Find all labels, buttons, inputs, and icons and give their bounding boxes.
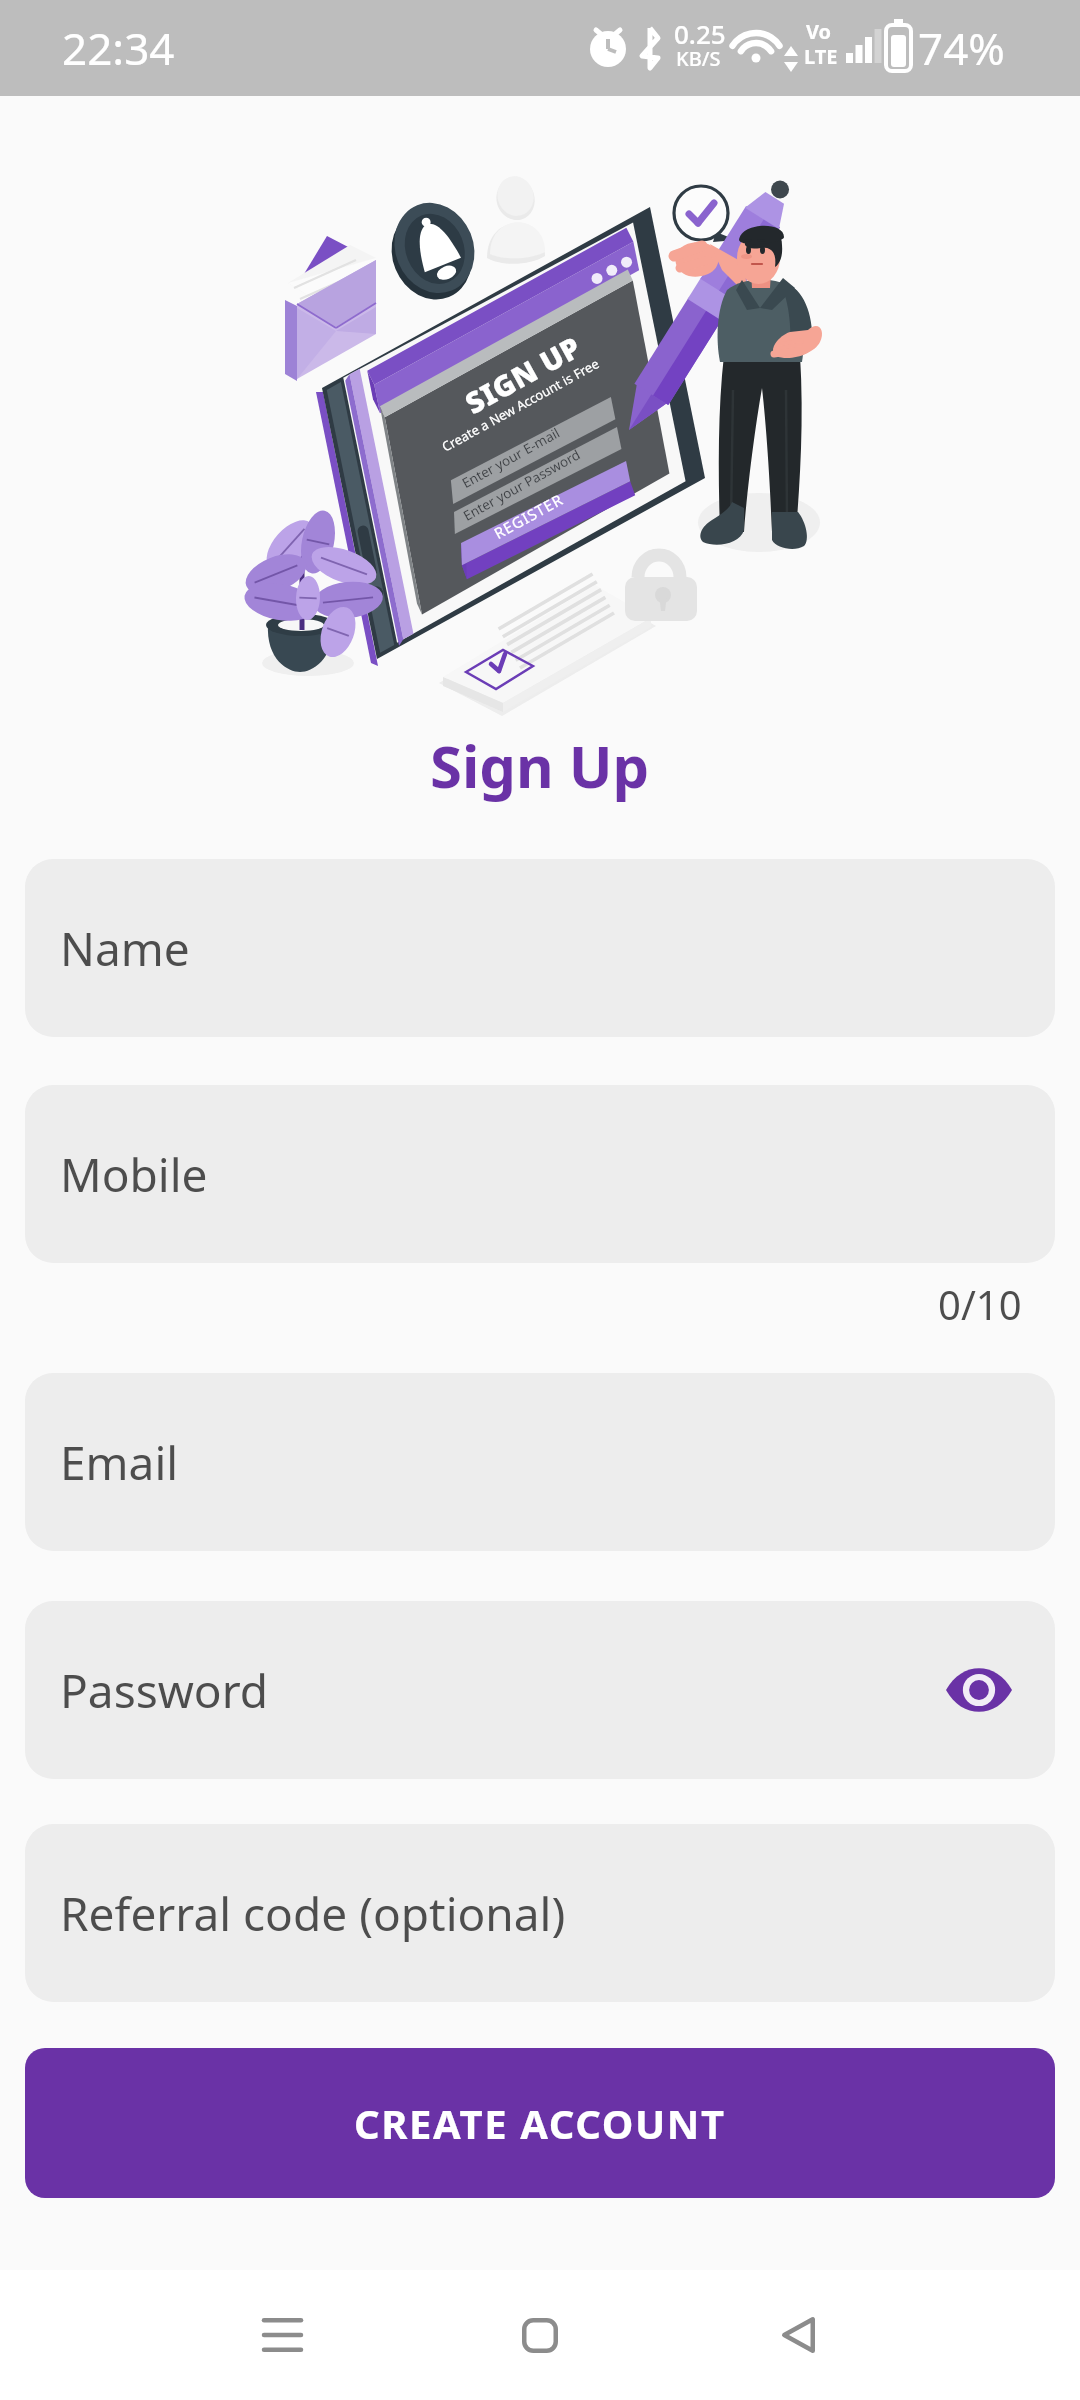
staticText: 0/10 <box>938 1277 1022 1331</box>
staticText: Password <box>60 1659 269 1722</box>
button[interactable]: Back <box>723 2270 873 2400</box>
staticText: CREATE ACCOUNT <box>354 2096 726 2150</box>
button[interactable]: CREATE ACCOUNT <box>25 2048 1055 2198</box>
staticText: Email <box>60 1431 179 1494</box>
staticText: Mobile <box>60 1143 208 1206</box>
staticText: Sign Up <box>430 726 650 805</box>
button[interactable]: Name <box>25 859 1055 1037</box>
button[interactable]: Home <box>465 2270 615 2400</box>
staticText: Name <box>60 917 190 980</box>
button[interactable]: Referral code (optional) <box>25 1824 1055 2002</box>
button[interactable]: Mobile <box>25 1085 1055 1263</box>
button[interactable]: Password <box>25 1601 1055 1779</box>
staticText: 22:34 <box>62 18 175 78</box>
button[interactable]: Email <box>25 1373 1055 1551</box>
button[interactable]: Recent apps <box>207 2270 357 2400</box>
staticText: Referral code (optional) <box>60 1882 566 1945</box>
button[interactable]: Show password <box>939 1650 1019 1730</box>
